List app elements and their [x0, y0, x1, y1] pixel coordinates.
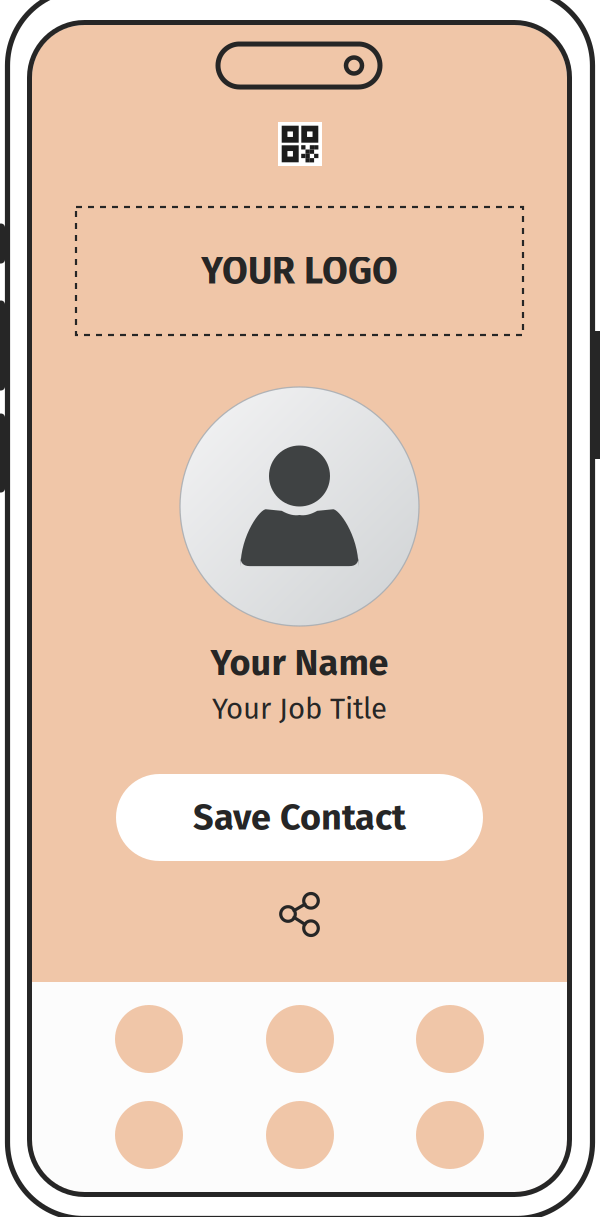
button[interactable]: Save Contact — [116, 774, 483, 861]
button[interactable]: App shortcut — [416, 1101, 484, 1169]
button[interactable]: App shortcut — [266, 1101, 334, 1169]
staticText: YOUR LOGO — [201, 249, 398, 293]
staticText: Save Contact — [193, 796, 406, 839]
button[interactable]: Show QR code — [278, 122, 322, 166]
button[interactable]: Share — [276, 891, 322, 937]
staticText: Your Name — [210, 641, 388, 685]
button[interactable]: App shortcut — [115, 1005, 183, 1073]
button[interactable]: App shortcut — [115, 1101, 183, 1169]
button[interactable]: App shortcut — [266, 1005, 334, 1073]
staticText: Your Job Title — [212, 691, 387, 727]
button[interactable]: App shortcut — [416, 1005, 484, 1073]
